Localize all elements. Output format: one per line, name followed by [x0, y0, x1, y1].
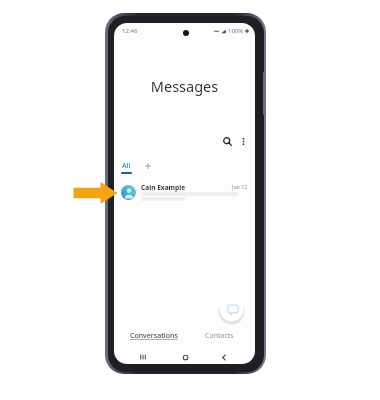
button[interactable]: Back [215, 349, 233, 364]
button[interactable]: New conversation [218, 296, 245, 323]
button[interactable]: Home [176, 349, 194, 364]
button[interactable]: Search [220, 134, 234, 148]
staticText: 12:46 [122, 27, 138, 35]
button[interactable]: More options [236, 134, 250, 148]
button[interactable]: All [119, 161, 134, 174]
button[interactable]: Contacts [186, 327, 252, 345]
button[interactable]: Cain Example [114, 179, 255, 205]
staticText: Cain Example [141, 183, 186, 192]
staticText: 100% [228, 27, 244, 35]
staticText: Messages [114, 76, 255, 96]
staticText: All [122, 161, 131, 171]
button[interactable]: Conversations [121, 327, 186, 345]
button[interactable]: Recents [134, 349, 152, 364]
button[interactable]: Add label [142, 160, 153, 171]
staticText: Contacts [205, 331, 234, 341]
staticText: Jun 12 [232, 183, 248, 190]
staticText: Conversations [130, 331, 178, 341]
